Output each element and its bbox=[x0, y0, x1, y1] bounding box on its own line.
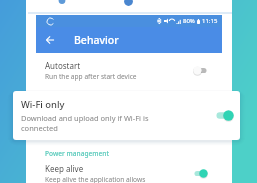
staticText: 11:15 bbox=[202, 17, 218, 25]
staticText: Wi-Fi only bbox=[21, 98, 65, 111]
button[interactable]: Switch on bbox=[215, 110, 234, 121]
button[interactable]: Back bbox=[43, 33, 57, 47]
staticText: Behavior bbox=[74, 33, 119, 47]
button[interactable]: Autostart bbox=[36, 56, 222, 84]
staticText: Keep alive bbox=[45, 163, 84, 174]
staticText: 80% bbox=[183, 17, 195, 25]
staticText: Keep alive the application allows bbox=[45, 175, 146, 183]
staticText: Run the app after start device bbox=[45, 72, 137, 81]
staticText: Autostart bbox=[45, 60, 81, 71]
button[interactable]: Switch on bbox=[193, 169, 208, 178]
button[interactable]: Wi-Fi only bbox=[13, 91, 240, 140]
staticText: Power management bbox=[45, 149, 110, 158]
button[interactable]: Keep alive bbox=[36, 159, 222, 183]
staticText: Download and upload only if Wi-Fi is con… bbox=[21, 113, 149, 133]
button[interactable]: Switch off bbox=[193, 66, 208, 75]
